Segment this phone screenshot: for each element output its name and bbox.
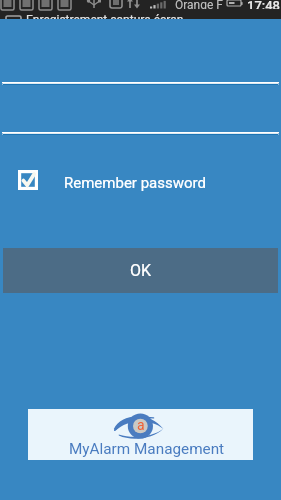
button[interactable]: OK [3, 248, 278, 293]
staticText: a [137, 417, 145, 433]
staticText: MyAlarm Management [69, 440, 225, 458]
button[interactable]: Remember password [0, 169, 281, 197]
staticText: Enregistrement capture écran [26, 13, 184, 19]
staticText: OK [130, 261, 152, 280]
staticText: Remember password [64, 174, 206, 192]
staticText: 17:48 [247, 0, 280, 9]
other: Remember password [18, 170, 38, 190]
staticText: Orange F [175, 0, 223, 9]
